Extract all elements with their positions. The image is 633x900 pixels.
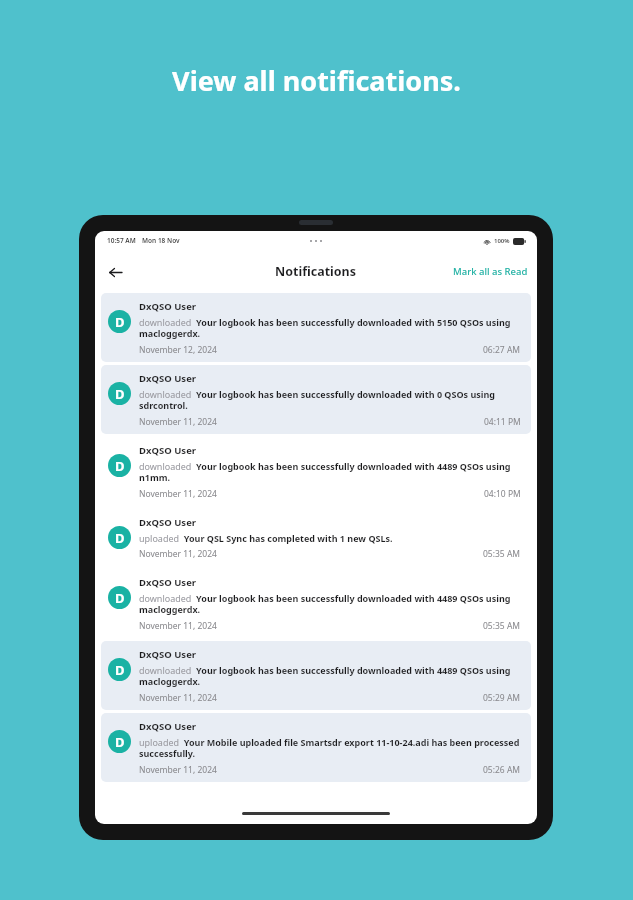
staticText: 05:35 AM [483, 548, 521, 560]
staticText: DxQSO User [139, 516, 197, 529]
staticText: DxQSO User [139, 444, 197, 457]
staticText: D [115, 313, 125, 331]
staticText: downloaded Your logbook has been success… [139, 460, 521, 484]
staticText: uploaded Your QSL Sync has completed wit… [139, 532, 393, 544]
staticText: uploaded Your Mobile uploaded file Smart… [139, 736, 521, 760]
button[interactable]: Back [100, 257, 130, 287]
button[interactable]: D [101, 293, 531, 362]
staticText: 04:11 PM [484, 416, 521, 428]
staticText: D [115, 661, 125, 679]
staticText: 04:10 PM [484, 488, 521, 500]
button[interactable]: D [101, 509, 531, 566]
staticText: downloaded Your logbook has been success… [139, 316, 521, 340]
staticText: 05:29 AM [483, 692, 521, 704]
staticText: November 11, 2024 [139, 548, 217, 560]
staticText: November 11, 2024 [139, 416, 217, 428]
staticText: 10:57 AM [107, 236, 136, 245]
staticText: November 11, 2024 [139, 692, 217, 704]
button[interactable]: D [101, 437, 531, 506]
staticText: November 12, 2024 [139, 344, 217, 356]
staticText: November 11, 2024 [139, 488, 217, 500]
staticText: D [115, 589, 125, 607]
staticText: Notifications [275, 263, 357, 280]
staticText: DxQSO User [139, 372, 197, 385]
staticText: downloaded Your logbook has been success… [139, 592, 521, 616]
staticText: DxQSO User [139, 648, 197, 661]
staticText: November 11, 2024 [139, 620, 217, 632]
staticText: 100% [494, 237, 510, 245]
button[interactable]: D [101, 569, 531, 638]
button[interactable]: Mark all as Read [444, 259, 537, 284]
staticText: DxQSO User [139, 576, 197, 589]
staticText: D [115, 529, 125, 547]
staticText: DxQSO User [139, 300, 197, 313]
staticText: downloaded Your logbook has been success… [139, 388, 521, 412]
staticText: D [115, 457, 125, 475]
staticText: D [115, 385, 125, 403]
staticText: November 11, 2024 [139, 764, 217, 776]
button[interactable]: D [101, 365, 531, 434]
button[interactable]: D [101, 713, 531, 782]
staticText: View all notifications. [0, 62, 633, 99]
button[interactable]: D [101, 641, 531, 710]
staticText: downloaded Your logbook has been success… [139, 664, 521, 688]
staticText: D [115, 733, 125, 751]
staticText: DxQSO User [139, 720, 197, 733]
staticText: 06:27 AM [483, 344, 521, 356]
staticText: 05:35 AM [483, 620, 521, 632]
staticText: Mon 18 Nov [142, 236, 180, 245]
staticText: 05:26 AM [483, 764, 521, 776]
staticText: Mark all as Read [453, 265, 528, 278]
